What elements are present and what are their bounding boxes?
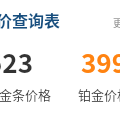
staticText: 铂金价格	[78, 85, 120, 104]
staticText: 399	[81, 43, 120, 81]
staticText: 523	[0, 43, 34, 81]
staticText: 更多	[113, 15, 120, 29]
staticText: 金条价格	[0, 85, 52, 104]
staticText: 价查询表	[0, 8, 61, 31]
